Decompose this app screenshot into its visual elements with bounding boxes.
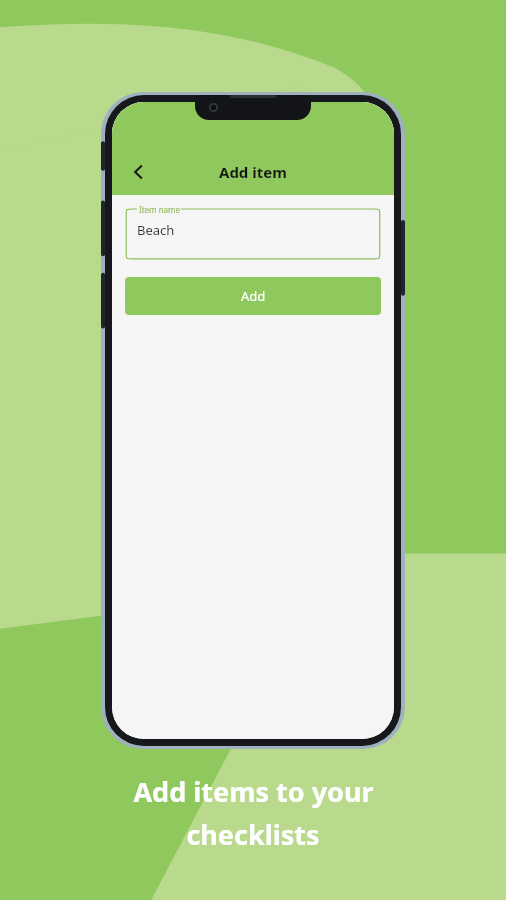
staticText: checklists: [186, 816, 320, 853]
button[interactable]: Add: [125, 277, 381, 315]
staticText: Beach: [137, 221, 175, 239]
button[interactable]: Item name: [125, 204, 381, 260]
staticText: Add items to your: [133, 773, 374, 810]
staticText: Add: [241, 287, 266, 305]
staticText: Item name: [139, 204, 181, 215]
staticText: Add item: [219, 162, 287, 182]
button[interactable]: Back: [120, 153, 158, 191]
